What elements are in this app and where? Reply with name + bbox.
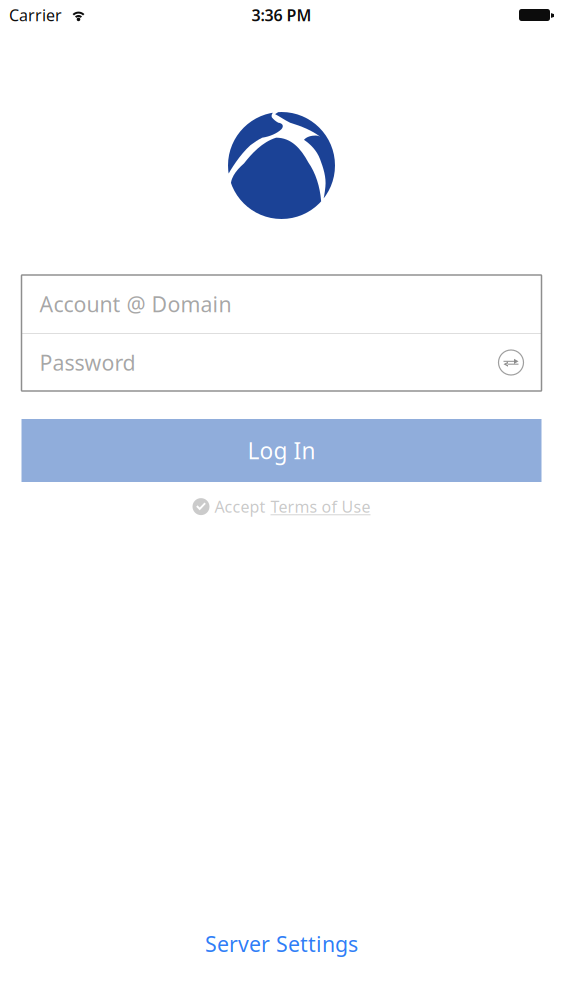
staticText: Accept (214, 496, 265, 517)
staticText: Server Settings (205, 930, 358, 958)
staticText: Password (39, 348, 135, 377)
button[interactable]: Log In (21, 419, 541, 482)
button[interactable]: Account @ Domain (21, 275, 541, 333)
button[interactable]: Accept (192, 496, 370, 517)
staticText: Terms of Use (270, 496, 370, 517)
button[interactable]: Password (21, 334, 541, 391)
staticText: Carrier (9, 4, 62, 26)
staticText: Log In (247, 435, 315, 465)
staticText: Account @ Domain (39, 290, 231, 318)
button[interactable]: Server Settings (205, 930, 358, 958)
staticText: 3:36 PM (251, 4, 311, 26)
